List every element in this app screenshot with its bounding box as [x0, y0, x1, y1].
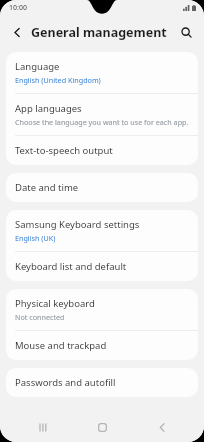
- button[interactable]: App languages: [6, 94, 198, 135]
- staticText: Passwords and autofill: [15, 376, 116, 389]
- staticText: Choose the language you want to use for …: [15, 117, 189, 127]
- staticText: Samsung Keyboard settings: [15, 218, 140, 231]
- staticText: Mouse and trackpad: [15, 339, 107, 352]
- button[interactable]: Back: [6, 21, 28, 43]
- staticText: English (United Kingdom): [15, 75, 101, 85]
- staticText: English (UK): [15, 233, 56, 243]
- button[interactable]: Back: [145, 412, 179, 442]
- staticText: Language: [15, 60, 60, 73]
- button[interactable]: Mouse and trackpad: [6, 331, 198, 360]
- staticText: Physical keyboard: [15, 297, 95, 310]
- staticText: Text-to-speech output: [15, 144, 113, 157]
- staticText: 10:00: [9, 3, 27, 13]
- staticText: App languages: [15, 102, 82, 115]
- button[interactable]: Language: [6, 52, 198, 93]
- button[interactable]: Recent apps: [26, 412, 60, 442]
- button[interactable]: Physical keyboard: [6, 289, 198, 330]
- button[interactable]: Date and time: [6, 173, 198, 202]
- staticText: General management: [31, 24, 167, 41]
- button[interactable]: Keyboard list and default: [6, 252, 198, 281]
- staticText: Not connected: [15, 312, 65, 322]
- staticText: Date and time: [15, 181, 79, 194]
- button[interactable]: Search: [175, 21, 197, 43]
- button[interactable]: Samsung Keyboard settings: [6, 210, 198, 251]
- staticText: Keyboard list and default: [15, 260, 127, 273]
- button[interactable]: Home: [85, 412, 119, 442]
- button[interactable]: Passwords and autofill: [6, 368, 198, 397]
- button[interactable]: Text-to-speech output: [6, 136, 198, 165]
